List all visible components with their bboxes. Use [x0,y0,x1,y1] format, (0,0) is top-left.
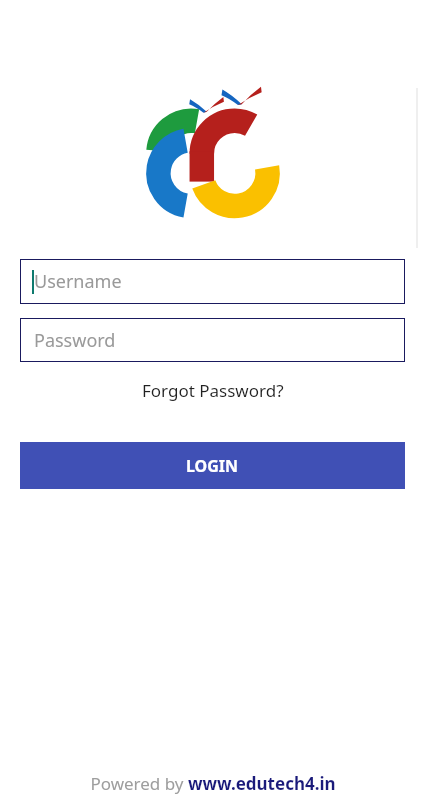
staticText: Password [34,328,116,353]
staticText: Forgot Password? [142,379,284,402]
staticText: LOGIN [186,455,239,477]
staticText: Username [34,269,122,294]
button[interactable]: LOGIN [20,442,405,489]
button[interactable]: Password [20,318,405,362]
button[interactable]: Forgot Password? [134,377,292,404]
staticText: Powered by www.edutech4.in [90,772,336,795]
button[interactable]: Username [20,259,405,304]
